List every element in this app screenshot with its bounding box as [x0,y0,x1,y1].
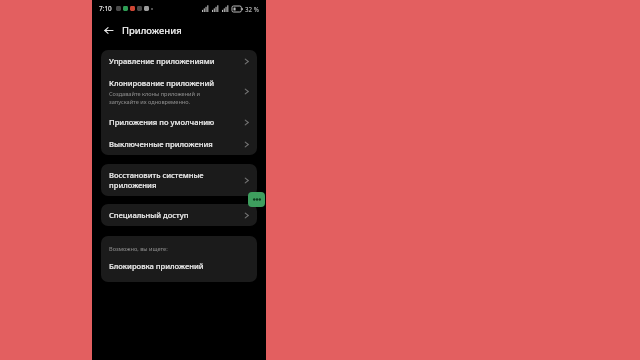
staticText: 7:10 [99,4,112,13]
staticText: Управление приложениями [109,56,215,66]
button[interactable]: Возможно, вы ищете: [101,236,257,282]
button[interactable]: Назад [101,23,115,37]
staticText: Специальный доступ [109,210,189,220]
button[interactable]: Специальный доступ [101,204,257,226]
button[interactable]: Восстановить системные приложения [101,164,257,196]
staticText: Возможно, вы ищете: [109,245,168,253]
button[interactable]: Выключенные приложения [101,133,257,155]
staticText: Выключенные приложения [109,139,213,149]
button[interactable]: Управление приложениями [101,50,257,72]
staticText: Восстановить системные приложения [109,170,204,190]
button[interactable]: Ещё [248,192,265,207]
staticText: Блокировка приложений [109,261,204,271]
button[interactable]: Клонирование приложений [101,72,257,111]
staticText: 32 % [245,5,259,13]
staticText: Создавайте клоны приложений и запускайте… [109,90,200,105]
staticText: Приложения [122,24,182,37]
staticText: Клонирование приложений [109,78,215,88]
staticText: Приложения по умолчанию [109,117,215,127]
button[interactable]: Приложения по умолчанию [101,111,257,133]
